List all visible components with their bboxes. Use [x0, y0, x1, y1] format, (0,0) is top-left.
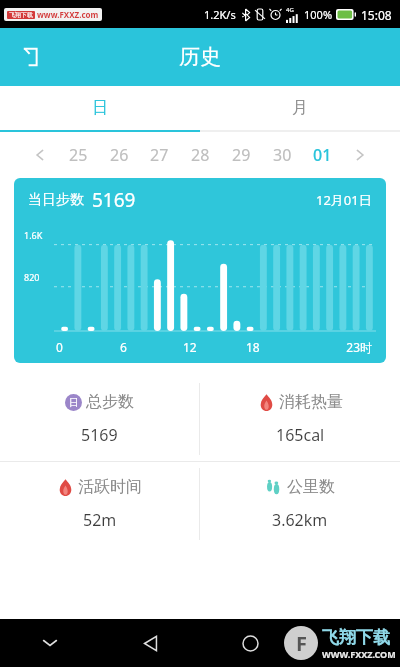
button[interactable]: 日	[0, 377, 199, 461]
staticText: 飞翔下载	[322, 627, 390, 648]
button[interactable]: 消耗热量	[200, 377, 400, 461]
button[interactable]: Home	[200, 619, 300, 667]
staticText: 18	[246, 339, 309, 355]
staticText: 6	[120, 339, 183, 355]
button[interactable]: Hide navigation bar	[0, 619, 100, 667]
staticText: 4G	[286, 6, 294, 14]
staticText: 26	[110, 144, 129, 166]
staticText: 日	[69, 396, 79, 409]
staticText: 27	[150, 144, 169, 166]
staticText: 总步数	[86, 392, 134, 412]
button[interactable]: 公里数	[200, 462, 400, 546]
button[interactable]: 29	[228, 139, 254, 171]
button[interactable]: 28	[187, 139, 213, 171]
staticText: 1.2K/s	[204, 7, 236, 22]
staticText: WWW.FXXZ.COM	[322, 648, 396, 660]
staticText: 100%	[304, 7, 333, 22]
staticText: 5169	[81, 424, 118, 446]
staticText: 当日步数	[28, 191, 84, 209]
staticText: 01	[313, 144, 332, 166]
staticText: 消耗热量	[279, 392, 343, 412]
staticText: 165cal	[276, 424, 325, 446]
button[interactable]: 27	[146, 139, 172, 171]
staticText: F	[296, 630, 307, 657]
staticText: 28	[191, 144, 210, 166]
staticText: 29	[232, 144, 251, 166]
staticText: 公里数	[287, 477, 335, 497]
button[interactable]: 30	[269, 139, 295, 171]
staticText: 12月01日	[316, 191, 372, 209]
staticText: 23时	[309, 339, 372, 355]
staticText: 0	[56, 339, 120, 355]
staticText: www.FXXZ.com	[37, 9, 99, 20]
staticText: 3.62km	[272, 509, 328, 531]
staticText: 25	[69, 144, 88, 166]
staticText: 52m	[83, 509, 117, 531]
staticText: 飞翔下载	[9, 11, 33, 19]
staticText: 活跃时间	[78, 477, 142, 497]
staticText: 历史	[179, 44, 221, 70]
staticText: 月	[292, 98, 308, 118]
staticText: 820	[24, 271, 40, 283]
button[interactable]: Next dates	[350, 145, 370, 165]
button[interactable]: 日	[0, 86, 200, 130]
staticText: 15:08	[361, 7, 392, 23]
button[interactable]: 01	[309, 139, 335, 171]
button[interactable]: Back	[100, 619, 200, 667]
button[interactable]: 活跃时间	[0, 462, 199, 546]
staticText: 12	[183, 339, 246, 355]
button[interactable]: Back	[12, 35, 56, 79]
staticText: 日	[92, 98, 108, 118]
button[interactable]: 26	[106, 139, 132, 171]
button[interactable]: 月	[200, 86, 400, 130]
staticText: 1.6K	[24, 229, 43, 241]
button[interactable]: 25	[65, 139, 91, 171]
button[interactable]: 当日步数	[14, 178, 386, 363]
staticText: 5169	[92, 187, 136, 213]
staticText: 30	[273, 144, 292, 166]
button[interactable]: Previous dates	[30, 145, 50, 165]
